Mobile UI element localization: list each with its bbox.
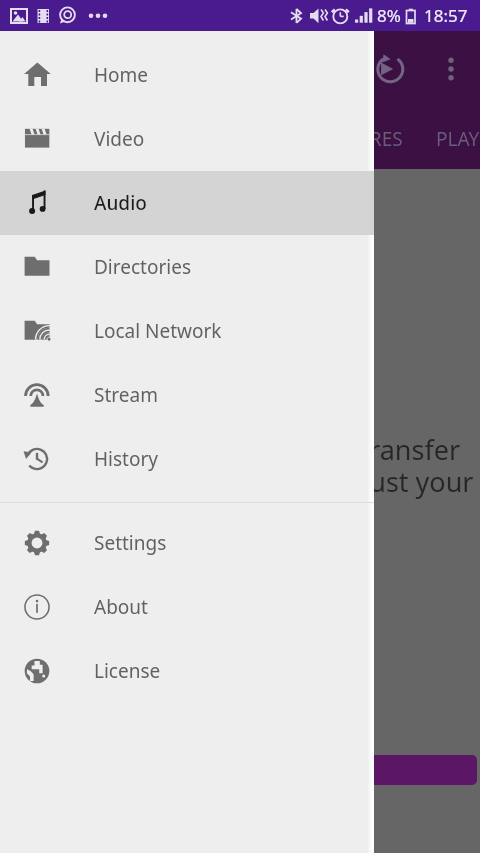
button[interactable]: More options [427,45,475,93]
staticText: History [94,446,158,472]
button[interactable]: Directories [0,235,374,299]
staticText: Video [94,126,145,152]
staticText: nd on your device. You can transfer s to… [0,431,477,532]
staticText: License [94,658,161,684]
button[interactable]: Home [0,43,374,107]
button[interactable]: Local Network [0,299,374,363]
staticText: Settings [94,530,167,556]
button[interactable]: Now playing [180,755,477,785]
button[interactable]: History [0,427,374,491]
button[interactable]: Refresh [366,43,414,91]
staticText: PLAYLISTS [436,126,480,150]
staticText: 8% [377,4,401,27]
button[interactable]: Audio [0,171,374,235]
staticText: Local Network [94,318,222,344]
staticText: Stream [94,382,158,408]
staticText: 18:57 [424,4,468,27]
staticText: Home [94,62,149,88]
button[interactable]: About [0,575,374,639]
staticText: Audio [94,190,147,216]
button[interactable]: Settings [0,511,374,575]
staticText: GENRES [331,126,403,150]
staticText: About [94,594,148,620]
button[interactable]: License [0,639,374,703]
staticText: Directories [94,254,191,280]
button[interactable]: Stream [0,363,374,427]
button[interactable]: Video [0,107,374,171]
